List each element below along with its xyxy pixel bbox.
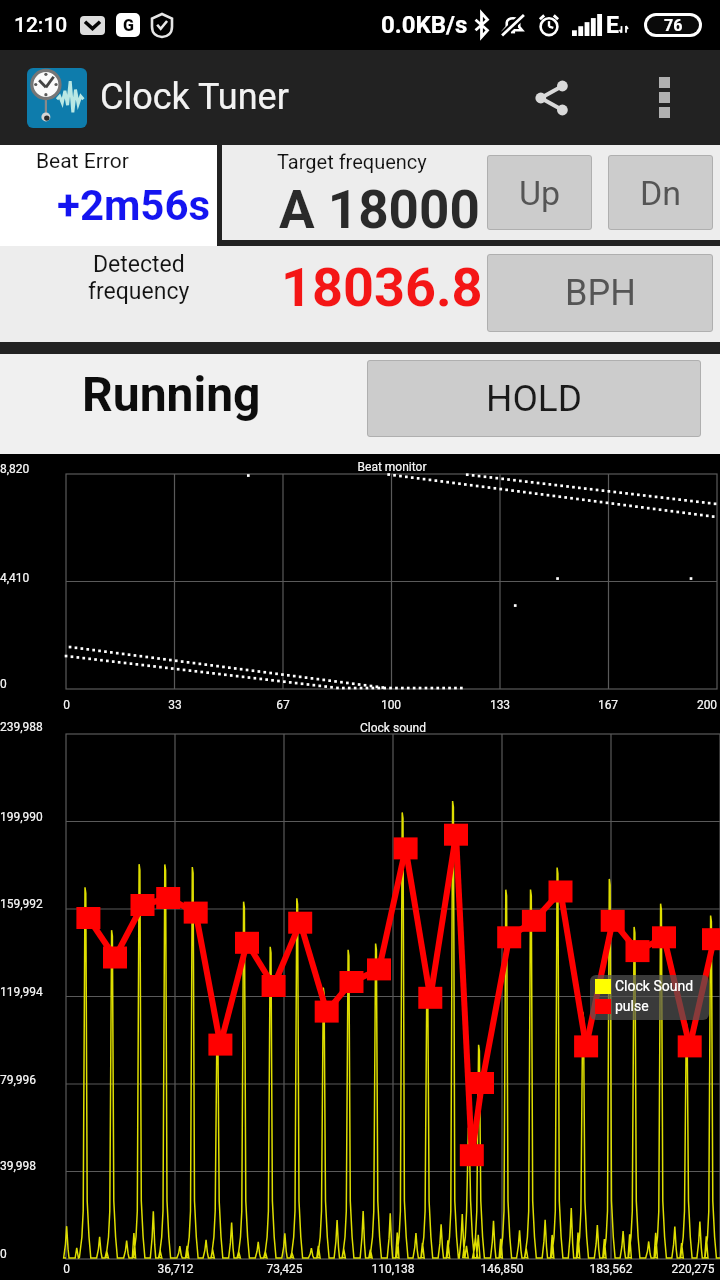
staticText: Running — [82, 366, 261, 422]
staticText: 220,275 — [667, 1262, 719, 1276]
staticText: 0 — [0, 677, 7, 691]
staticText: Clock Tuner — [100, 76, 289, 118]
staticText: HOLD — [486, 377, 583, 420]
button[interactable]: Dn — [608, 155, 713, 230]
button[interactable]: BPH — [487, 254, 713, 332]
staticText: 76 — [664, 16, 683, 34]
staticText: 73,425 — [262, 1262, 307, 1276]
staticText: 33 — [166, 698, 184, 712]
button[interactable]: Up — [487, 155, 592, 230]
button[interactable]: More options — [608, 50, 720, 145]
staticText: 239,988 — [0, 720, 43, 734]
staticText: 18036.8 — [281, 256, 483, 319]
staticText: 0 — [61, 1262, 72, 1276]
staticText: frequency — [88, 278, 190, 305]
staticText: A 18000 — [279, 179, 480, 241]
staticText: 167 — [596, 698, 620, 712]
staticText: 8,820 — [0, 462, 30, 476]
button[interactable]: Detected — [0, 246, 720, 342]
staticText: Clock sound — [333, 721, 453, 735]
staticText: 36,712 — [153, 1262, 198, 1276]
staticText: Beat Error — [36, 149, 129, 174]
staticText: 0.0KB/s — [381, 11, 468, 39]
staticText: 100 — [379, 698, 403, 712]
staticText: Detected — [93, 251, 185, 278]
staticText: E — [606, 12, 619, 39]
staticText: 159,992 — [0, 897, 43, 911]
staticText: 79,996 — [0, 1073, 37, 1087]
button[interactable]: Beat Error — [0, 145, 217, 246]
staticText: 67 — [274, 698, 292, 712]
staticText: Up — [519, 173, 561, 213]
staticText: Target frequency — [277, 150, 427, 173]
staticText: Clock Sound — [615, 978, 694, 994]
staticText: 183,562 — [585, 1262, 637, 1276]
staticText: Dn — [640, 173, 682, 213]
button[interactable]: Share — [496, 50, 608, 145]
staticText: pulse — [615, 998, 649, 1014]
staticText: 146,850 — [476, 1262, 528, 1276]
staticText: +2m56s — [57, 181, 211, 230]
staticText: 110,138 — [367, 1262, 419, 1276]
button[interactable]: Target frequency — [222, 145, 720, 240]
staticText: 119,994 — [0, 985, 43, 999]
staticText: 199,990 — [0, 810, 43, 824]
staticText: 39,998 — [0, 1159, 37, 1173]
staticText: 0 — [0, 1247, 7, 1261]
button[interactable]: HOLD — [367, 360, 701, 437]
staticText: 0 — [61, 698, 72, 712]
staticText: Beat monitor — [332, 460, 452, 474]
staticText: G — [123, 16, 134, 35]
staticText: 4,410 — [0, 571, 30, 585]
staticText: BPH — [565, 272, 636, 314]
staticText: 133 — [488, 698, 512, 712]
staticText: 200 — [695, 698, 719, 712]
staticText: 12:10 — [14, 13, 68, 38]
